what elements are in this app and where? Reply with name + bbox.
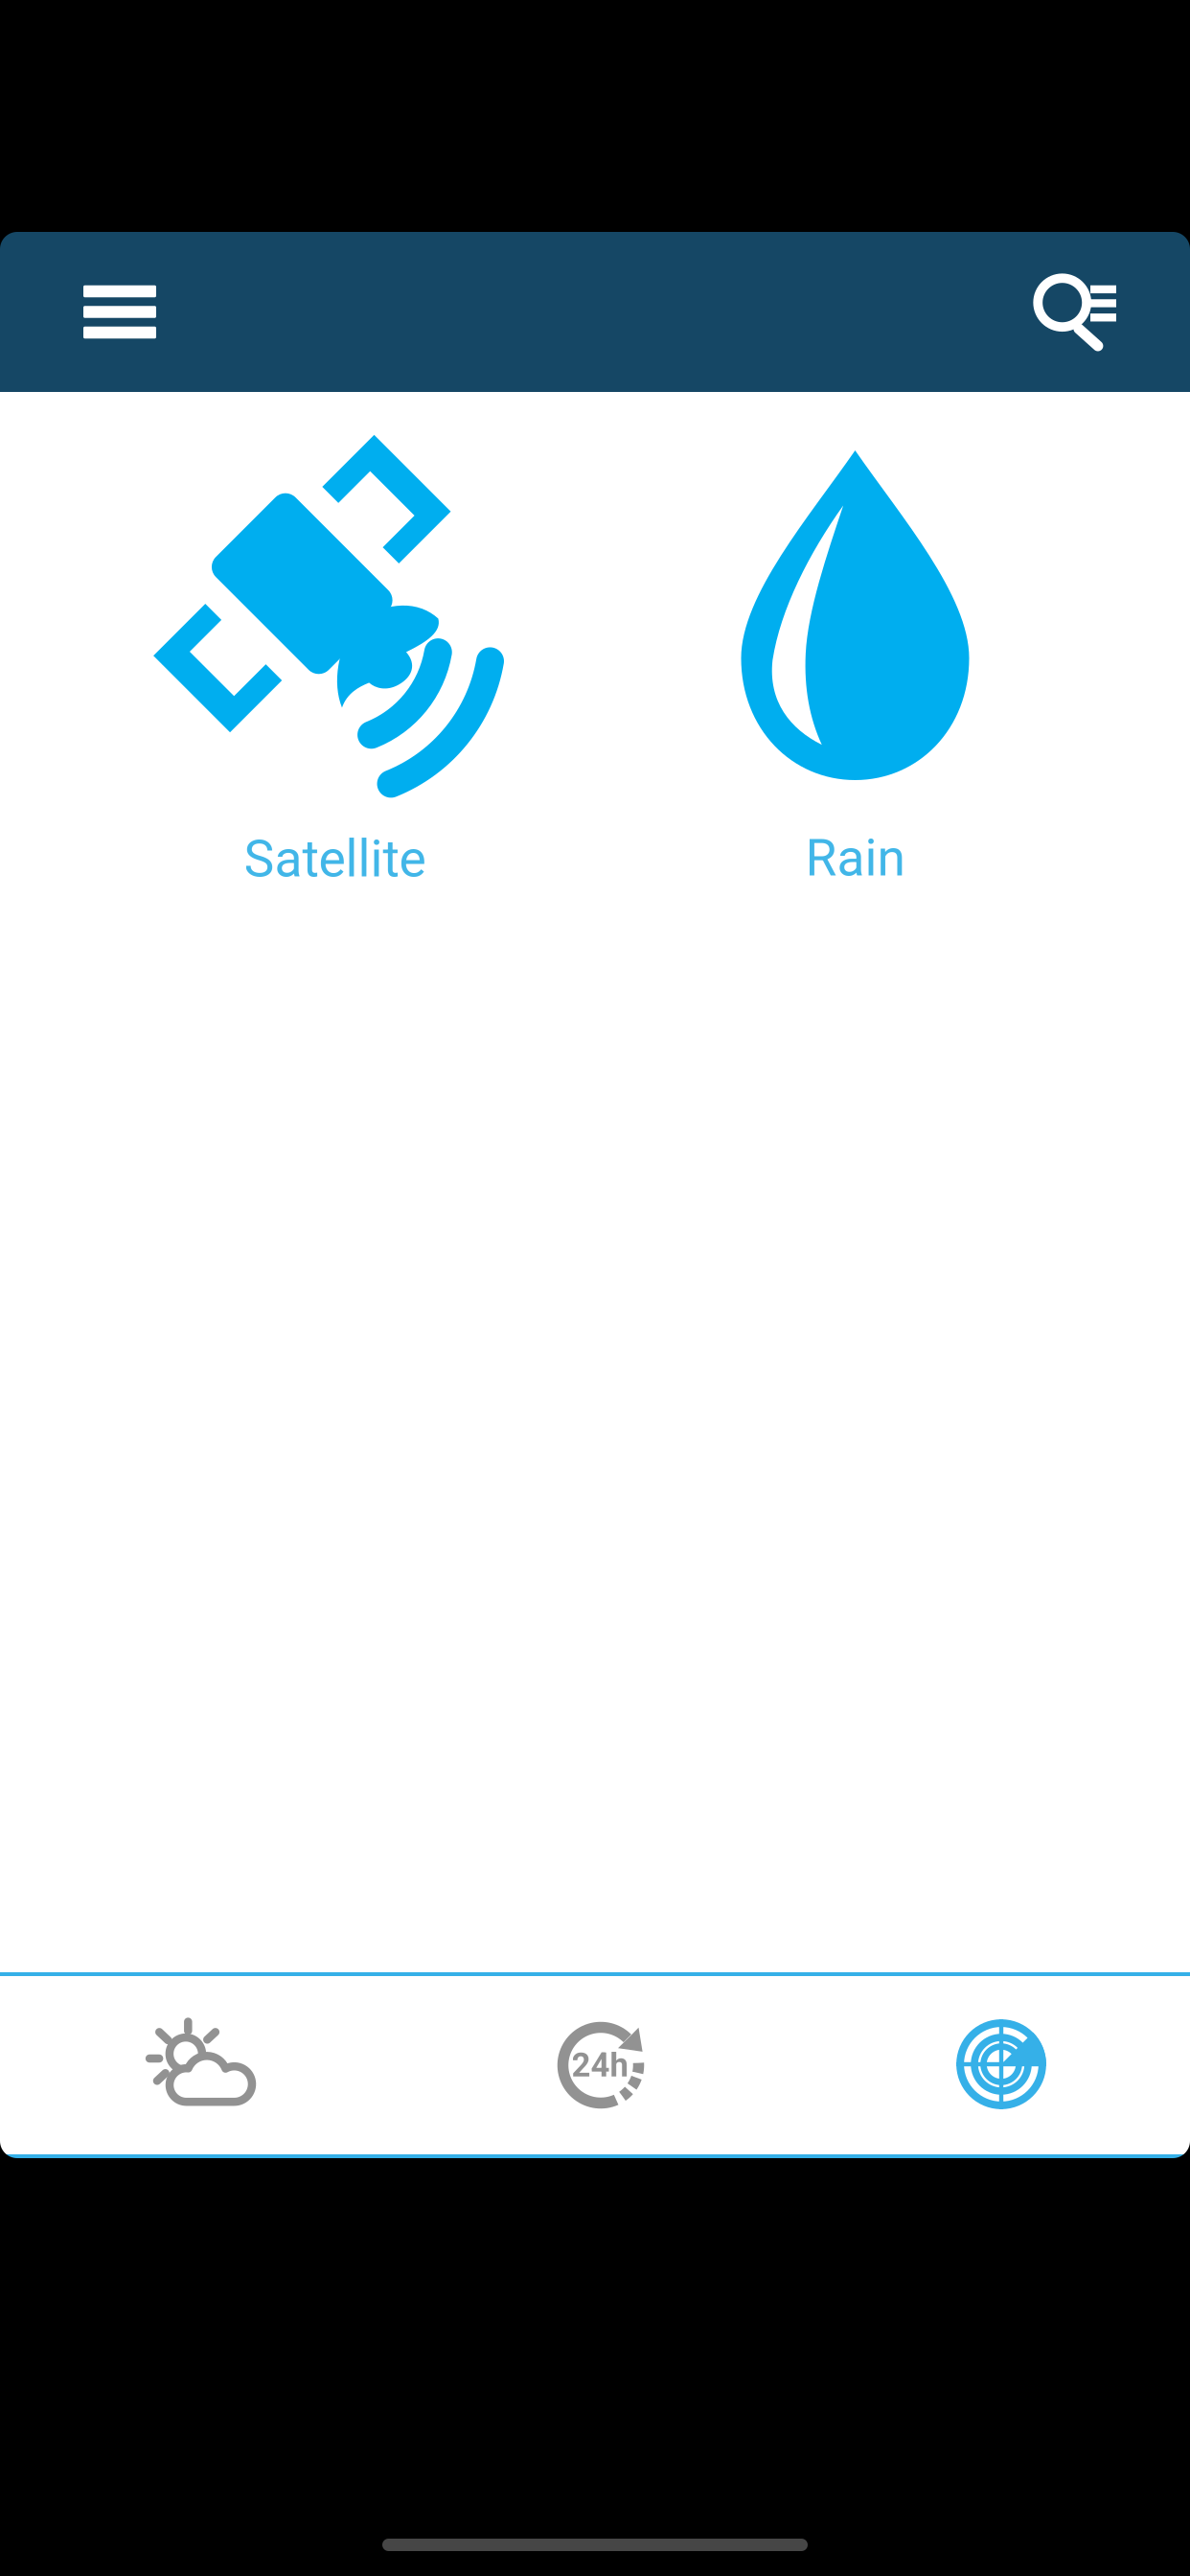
button[interactable]: Rain [595,392,1190,1972]
button[interactable]: Satellite [0,392,595,1972]
button[interactable]: Forecast [0,1976,397,2154]
staticText: Rain [805,828,905,888]
button[interactable]: Radar [793,1976,1190,2154]
button[interactable]: 24 hour forecast [397,1976,793,2154]
button[interactable]: Search [1033,232,1190,392]
staticText: 24h [572,2046,628,2085]
staticText: Satellite [244,829,426,889]
button[interactable]: Menu [0,232,156,392]
